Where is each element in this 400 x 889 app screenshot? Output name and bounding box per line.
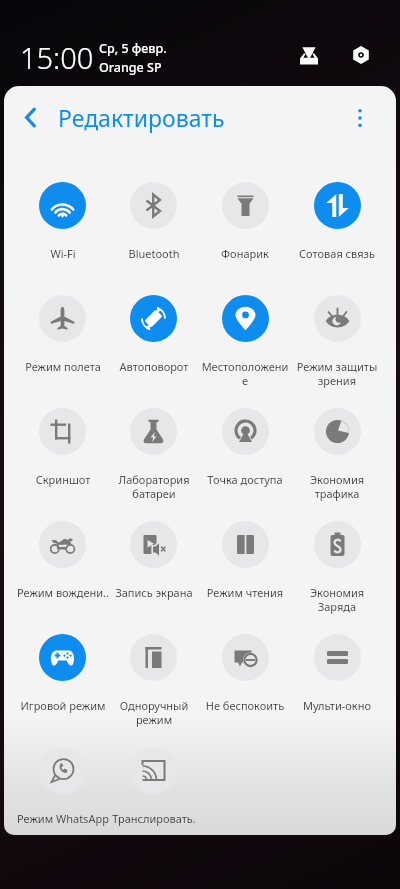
- button[interactable]: Автоповорот: [108, 262, 199, 375]
- staticText: Транслировать.: [107, 811, 201, 826]
- button[interactable]: Wi-Fi: [17, 149, 108, 262]
- staticText: Сотовая связь: [290, 246, 384, 261]
- staticText: Ср, 5 февр.: [99, 40, 167, 57]
- button[interactable]: Режим вождени..: [17, 488, 108, 601]
- button[interactable]: Settings: [344, 38, 378, 72]
- button[interactable]: Bluetooth: [108, 149, 199, 262]
- staticText: Игровой режим: [16, 698, 110, 713]
- button[interactable]: Игровой режим: [17, 601, 108, 714]
- button[interactable]: Скриншот: [17, 375, 108, 488]
- staticText: Лаборатория батареи: [107, 472, 201, 502]
- staticText: Режим чтения: [198, 585, 292, 600]
- staticText: Экономия трафика: [290, 472, 384, 502]
- staticText: Редактировать: [58, 102, 225, 133]
- staticText: 15:00: [20, 38, 94, 77]
- staticText: Orange SP: [99, 59, 162, 76]
- staticText: Скриншот: [16, 472, 110, 487]
- staticText: Местоположени е: [198, 359, 292, 389]
- staticText: Режим WhatsApp: [16, 811, 110, 826]
- button[interactable]: Одноручный режим: [108, 601, 199, 714]
- button[interactable]: Inbox: [292, 38, 326, 72]
- staticText: Не беспокоить: [198, 698, 292, 713]
- staticText: Автоповорот: [107, 359, 201, 374]
- button[interactable]: Мульти-окно: [291, 601, 383, 714]
- staticText: Wi-Fi: [16, 246, 110, 261]
- staticText: Точка доступа: [198, 472, 292, 487]
- button[interactable]: Не беспокоить: [199, 601, 291, 714]
- button[interactable]: Режим полета: [17, 262, 108, 375]
- staticText: Фонарик: [198, 246, 292, 261]
- button[interactable]: Сотовая связь: [291, 149, 383, 262]
- button[interactable]: More options: [342, 100, 378, 136]
- button[interactable]: Запись экрана: [108, 488, 199, 601]
- staticText: Bluetooth: [107, 246, 201, 261]
- staticText: Режим вождени..: [16, 585, 110, 600]
- staticText: Экономия Заряда: [290, 585, 384, 615]
- staticText: Режим полета: [16, 359, 110, 374]
- staticText: Запись экрана: [107, 585, 201, 600]
- button[interactable]: Режим чтения: [199, 488, 291, 601]
- button[interactable]: Режим защиты зрения: [291, 262, 383, 375]
- staticText: Режим защиты зрения: [290, 359, 384, 389]
- staticText: Мульти-окно: [290, 698, 384, 713]
- button[interactable]: Транслировать.: [108, 714, 199, 827]
- button[interactable]: Back: [11, 98, 50, 137]
- button[interactable]: Точка доступа: [199, 375, 291, 488]
- button[interactable]: Экономия Заряда: [291, 488, 383, 601]
- button[interactable]: Режим WhatsApp: [17, 714, 108, 827]
- button[interactable]: Местоположени е: [199, 262, 291, 375]
- button[interactable]: Фонарик: [199, 149, 291, 262]
- staticText: Одноручный режим: [107, 698, 201, 728]
- button[interactable]: Лаборатория батареи: [108, 375, 199, 488]
- button[interactable]: Экономия трафика: [291, 375, 383, 488]
